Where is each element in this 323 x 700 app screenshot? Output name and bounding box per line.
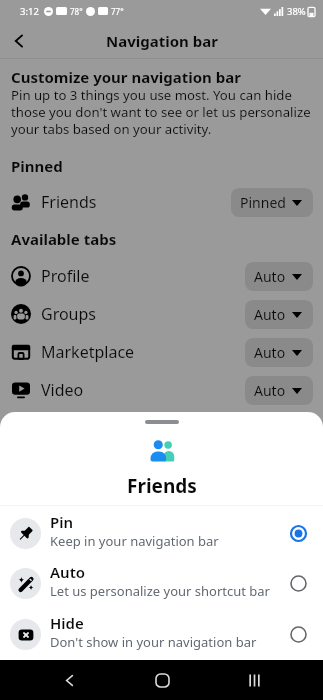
button[interactable]: Hide (0, 609, 323, 659)
staticText: 78° (70, 6, 83, 17)
button[interactable]: Auto (245, 338, 313, 367)
staticText: Don't show in your navigation bar (50, 633, 257, 651)
button[interactable]: Auto (245, 300, 313, 329)
staticText: Pinned (11, 156, 63, 176)
staticText: Hide (50, 613, 84, 633)
staticText: Auto (254, 343, 286, 362)
staticText: Pinned (240, 193, 286, 212)
button[interactable]: Auto (245, 262, 313, 291)
staticText: 77° (111, 6, 124, 17)
button[interactable]: Back (0, 22, 37, 59)
staticText: Pin up to 3 things you use most. You can… (11, 86, 321, 138)
button[interactable]: Recent apps (230, 660, 278, 700)
staticText: 3:12 (20, 5, 39, 18)
button[interactable]: Video (0, 371, 323, 409)
staticText: Auto (254, 381, 286, 400)
staticText: Friends (127, 473, 197, 499)
staticText: Let us personalize your shortcut bar (50, 582, 270, 600)
staticText: Auto (50, 562, 85, 582)
staticText: Navigation bar (106, 31, 218, 51)
button[interactable]: Pin (0, 508, 323, 558)
button[interactable]: Back (45, 660, 93, 700)
staticText: Available tabs (11, 229, 117, 249)
button[interactable]: Friends (0, 183, 323, 221)
button[interactable]: Auto (0, 558, 323, 608)
staticText: Marketplace (41, 341, 135, 363)
staticText: Auto (254, 267, 286, 286)
staticText: Groups (41, 303, 97, 325)
button[interactable]: Profile (0, 257, 323, 295)
staticText: Customize your navigation bar (11, 67, 241, 87)
staticText: Profile (41, 265, 90, 287)
button[interactable]: Auto (245, 376, 313, 405)
button[interactable]: Marketplace (0, 333, 323, 371)
button[interactable]: Pinned (231, 188, 313, 217)
staticText: Video (41, 379, 84, 401)
staticText: Auto (254, 305, 286, 324)
button[interactable]: Home (138, 660, 186, 700)
staticText: Pin (50, 512, 74, 532)
button[interactable]: Groups (0, 295, 323, 333)
staticText: 38% (287, 5, 306, 18)
staticText: Friends (41, 191, 97, 213)
staticText: Keep in your navigation bar (50, 532, 219, 550)
